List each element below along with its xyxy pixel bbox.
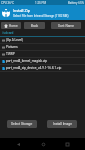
staticText: Install Image <box>53 122 72 126</box>
button[interactable]: Back <box>24 22 45 29</box>
staticText: /sdcard <box>2 31 14 35</box>
staticText: Select File from Internal Storage (1182 … <box>13 14 69 17</box>
button[interactable]: Install Image <box>47 120 77 128</box>
button[interactable]: port_end4_kernel_magisk.zip <box>0 58 85 64</box>
button[interactable]: TWRP <box>0 51 85 57</box>
button[interactable]: Select Storage <box>7 120 37 128</box>
button[interactable]: (Up A Level) <box>0 37 85 43</box>
button[interactable]: Recent apps <box>60 138 74 150</box>
staticText: Home <box>9 24 18 28</box>
staticText: 1:25 PM <box>35 1 47 5</box>
staticText: Battery 65% <box>68 1 84 5</box>
button[interactable]: Home <box>1 22 21 29</box>
staticText: TWRP <box>6 52 15 56</box>
staticText: Install Zip <box>13 8 30 13</box>
button[interactable]: port_end4_zip_device_v4.9.1-16.8.1.zip <box>0 65 85 71</box>
button[interactable]: Pictures <box>0 44 85 50</box>
button[interactable]: Sort: Name <box>51 22 81 29</box>
staticText: Pictures <box>6 45 18 49</box>
button[interactable]: Back <box>11 138 25 150</box>
staticText: port_end4_zip_device_v4.9.1-16.8.1.zip <box>6 66 62 70</box>
staticText: Back <box>31 24 39 28</box>
staticText: Select Storage <box>11 122 33 126</box>
staticText: Sort: Name <box>58 24 74 28</box>
staticText: CPU 36°C <box>1 1 14 5</box>
staticText: port_end4_kernel_magisk.zip <box>6 59 48 63</box>
staticText: (Up A Level) <box>6 38 24 42</box>
button[interactable]: Home <box>36 138 50 150</box>
